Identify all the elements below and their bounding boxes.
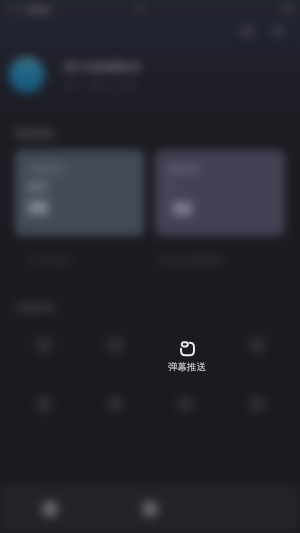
- button[interactable]: Settings: [268, 21, 288, 41]
- staticText: 会员: [27, 180, 47, 193]
- button[interactable]: [150, 334, 221, 375]
- button[interactable]: 用户名称昵称名: [9, 44, 290, 106]
- button[interactable]: Scan: [237, 21, 257, 41]
- button[interactable]: 历史: [8, 393, 79, 433]
- button[interactable]: Home: [0, 501, 100, 517]
- staticText: 功能列表: [15, 301, 55, 314]
- staticText: 我的服务: [15, 127, 55, 140]
- staticText: 充值: [175, 204, 189, 213]
- button[interactable]: 下载: [79, 393, 150, 433]
- button[interactable]: 动态: [79, 334, 150, 374]
- button[interactable]: 帮助: [221, 393, 292, 433]
- button[interactable]: 直播: [8, 334, 79, 374]
- button[interactable]: 收藏: [221, 334, 292, 374]
- button[interactable]: Dynamic: [100, 501, 200, 517]
- button[interactable]: 大会员中心: [15, 150, 144, 236]
- button[interactable]: 我的钱包: [155, 150, 285, 236]
- button[interactable]: 设置: [150, 393, 221, 433]
- staticText: 用户名称昵称名: [64, 60, 141, 74]
- staticText: 10:24 ■■■: [5, 3, 51, 14]
- staticText: 弹幕推送: [168, 361, 206, 373]
- staticText: 开通: [31, 203, 45, 212]
- button[interactable]: 弹幕推送: [152, 340, 222, 373]
